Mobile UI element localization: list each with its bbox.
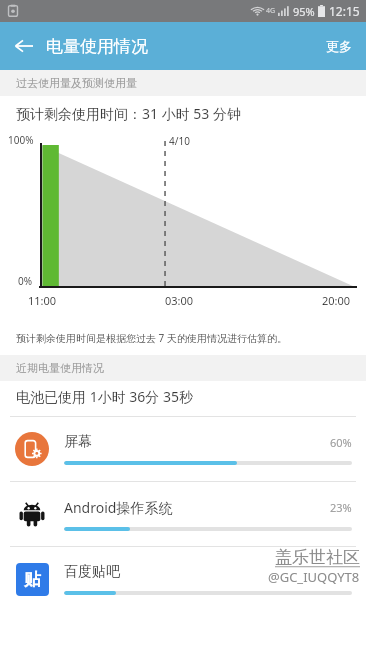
button[interactable]: 贴 [0,547,366,611]
staticText: 4/10 [169,134,190,148]
staticText: 03:00 [165,293,194,308]
staticText: 百度贴吧 [64,563,120,581]
staticText: 近期电量使用情况 [16,361,104,375]
staticText: Android操作系统 [64,498,173,517]
staticText: 过去使用量及预测使用量 [16,76,137,90]
staticText: 12:15 [329,3,360,19]
staticText: 贴 [24,569,41,590]
staticText: @GC_IUQQYT8 [268,568,360,586]
button[interactable]: 屏幕 [0,417,366,481]
staticText: 电量使用情况 [46,36,148,57]
staticText: 更多 [326,38,352,54]
staticText: 电池已使用 1小时 36分 35秒 [16,387,193,406]
staticText: 4G [266,6,276,16]
staticText: 0% [18,274,33,288]
button[interactable]: Android操作系统 [0,482,366,546]
staticText: 60% [330,435,352,450]
button[interactable]: Back [4,26,44,66]
staticText: 95% [293,4,315,19]
button[interactable]: 更多 [312,28,366,64]
staticText: 预计剩余使用时间是根据您过去 7 天的使用情况进行估算的。 [16,331,287,345]
staticText: 100% [8,133,34,147]
staticText: 盖乐世社区 [275,547,360,568]
staticText: 11:00 [28,293,57,308]
staticText: 预计剩余使用时间：31 小时 53 分钟 [16,104,241,123]
staticText: 20:00 [322,293,351,308]
staticText: 屏幕 [64,433,92,451]
staticText: 23% [330,500,352,515]
